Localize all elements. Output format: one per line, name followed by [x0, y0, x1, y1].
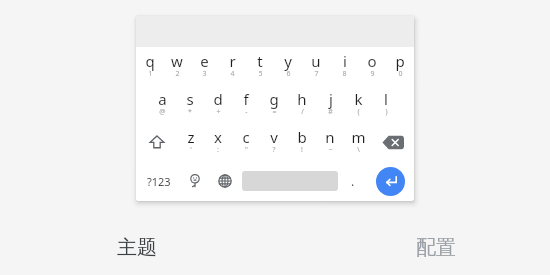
- staticText: z: [187, 127, 195, 147]
- staticText: y: [284, 51, 292, 71]
- button[interactable]: l: [372, 85, 400, 123]
- staticText: w: [171, 51, 183, 71]
- staticText: t: [257, 51, 263, 71]
- button[interactable]: Shift: [136, 123, 177, 161]
- staticText: 0: [398, 69, 403, 79]
- button[interactable]: s: [176, 85, 204, 123]
- staticText: #: [328, 107, 333, 117]
- staticText: 9: [370, 69, 375, 79]
- staticText: x: [214, 127, 222, 147]
- staticText: -: [245, 107, 248, 117]
- staticText: v: [270, 127, 278, 147]
- button[interactable]: d: [204, 85, 232, 123]
- button[interactable]: t: [246, 47, 274, 85]
- staticText: ~: [328, 145, 333, 155]
- staticText: =: [272, 107, 277, 117]
- button[interactable]: u: [302, 47, 330, 85]
- staticText: ?: [272, 145, 276, 155]
- button[interactable]: z: [177, 123, 204, 161]
- staticText: s: [186, 89, 194, 109]
- staticText: o: [367, 51, 377, 71]
- staticText: \: [357, 145, 360, 155]
- button[interactable]: Emoji: [181, 161, 209, 201]
- staticText: 2: [175, 69, 180, 79]
- staticText: 4: [230, 69, 235, 79]
- staticText: n: [325, 127, 335, 147]
- staticText: 7: [314, 69, 319, 79]
- staticText: q: [145, 51, 155, 71]
- button[interactable]: r: [218, 47, 246, 85]
- staticText: +: [216, 107, 221, 117]
- button[interactable]: ?123: [136, 161, 181, 201]
- staticText: !: [301, 145, 303, 155]
- staticText: c: [242, 127, 250, 147]
- staticText: /: [301, 107, 304, 117]
- staticText: h: [297, 89, 307, 109]
- button[interactable]: n: [316, 123, 344, 161]
- button[interactable]: 配置: [416, 235, 456, 260]
- staticText: d: [213, 89, 223, 109]
- button[interactable]: x: [204, 123, 232, 161]
- button[interactable]: p: [386, 47, 414, 85]
- button[interactable]: c: [232, 123, 260, 161]
- staticText: i: [343, 51, 347, 71]
- staticText: ): [385, 107, 388, 117]
- staticText: k: [354, 89, 363, 109]
- button[interactable]: .: [339, 161, 367, 201]
- button[interactable]: b: [288, 123, 316, 161]
- staticText: l: [384, 89, 388, 109]
- button[interactable]: f: [232, 85, 260, 123]
- staticText: ': [190, 145, 192, 155]
- button[interactable]: g: [260, 85, 288, 123]
- staticText: 8: [342, 69, 347, 79]
- staticText: r: [229, 51, 236, 71]
- button[interactable]: m: [344, 123, 372, 161]
- staticText: ": [245, 145, 248, 155]
- staticText: f: [243, 89, 249, 109]
- staticText: 3: [202, 69, 207, 79]
- staticText: u: [311, 51, 321, 71]
- staticText: 5: [258, 69, 263, 79]
- button[interactable]: Backspace: [372, 123, 414, 161]
- staticText: j: [329, 89, 333, 109]
- staticText: :: [217, 145, 219, 155]
- staticText: (: [357, 107, 360, 117]
- staticText: e: [200, 51, 209, 71]
- staticText: a: [158, 89, 167, 109]
- button[interactable]: Enter: [367, 161, 414, 201]
- button[interactable]: h: [288, 85, 316, 123]
- button[interactable]: v: [260, 123, 288, 161]
- staticText: 1: [148, 69, 153, 79]
- staticText: m: [351, 127, 366, 147]
- button[interactable]: o: [358, 47, 386, 85]
- button[interactable]: Change language: [209, 161, 240, 201]
- button[interactable]: w: [163, 47, 190, 85]
- button[interactable]: e: [190, 47, 218, 85]
- staticText: ?123: [147, 174, 171, 189]
- button[interactable]: y: [274, 47, 302, 85]
- button[interactable]: a: [149, 85, 176, 123]
- button[interactable]: i: [330, 47, 358, 85]
- staticText: b: [297, 127, 307, 147]
- staticText: p: [395, 51, 405, 71]
- button[interactable]: k: [344, 85, 372, 123]
- button[interactable]: j: [316, 85, 344, 123]
- button[interactable]: 主题: [117, 235, 157, 260]
- staticText: *: [188, 107, 192, 117]
- staticText: 6: [286, 69, 291, 79]
- staticText: .: [351, 173, 355, 189]
- staticText: @: [159, 107, 166, 117]
- button[interactable]: q: [136, 47, 163, 85]
- staticText: g: [269, 89, 279, 109]
